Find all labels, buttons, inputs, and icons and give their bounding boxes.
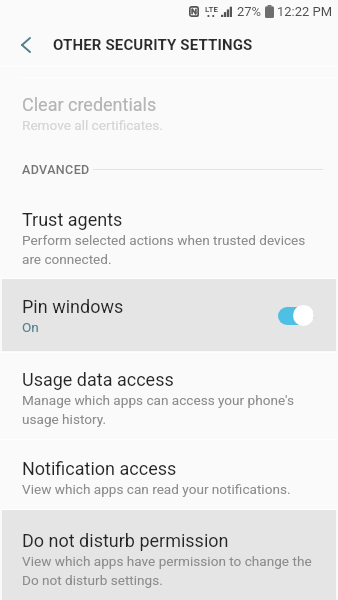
button[interactable]: Pin windows — [0, 279, 338, 351]
staticText: Usage data access — [22, 369, 174, 390]
staticText: Do not disturb permission — [22, 530, 229, 551]
staticText: usage history. — [22, 411, 107, 427]
staticText: 12:22 PM — [277, 4, 333, 19]
staticText: Do not disturb settings. — [22, 572, 163, 588]
button[interactable]: Navigate up — [0, 23, 44, 67]
staticText: Remove all certificates. — [22, 117, 163, 133]
button[interactable]: Pin windows, on — [273, 279, 319, 351]
staticText: LTE — [205, 5, 218, 14]
staticText: View which apps can read your notificati… — [22, 481, 291, 497]
staticText: are connected. — [22, 251, 112, 267]
staticText: 27% — [237, 4, 262, 19]
staticText: View which apps have permission to chang… — [22, 553, 312, 569]
staticText: Pin windows — [22, 296, 124, 317]
staticText: Trust agents — [22, 209, 123, 230]
staticText: Notification access — [22, 458, 177, 479]
staticText: On — [22, 319, 39, 335]
button[interactable]: Notification access — [0, 440, 338, 510]
staticText: ADVANCED — [22, 162, 90, 177]
button[interactable]: Trust agents — [0, 184, 338, 279]
button[interactable]: Usage data access — [0, 351, 338, 440]
button[interactable]: Clear credentials — [0, 78, 338, 154]
staticText: Clear credentials — [22, 94, 157, 115]
button[interactable]: Do not disturb permission — [0, 510, 338, 600]
staticText: OTHER SECURITY SETTINGS — [53, 36, 253, 54]
staticText: Manage which apps can access your phone'… — [22, 392, 294, 408]
staticText: Perform selected actions when trusted de… — [22, 232, 306, 248]
